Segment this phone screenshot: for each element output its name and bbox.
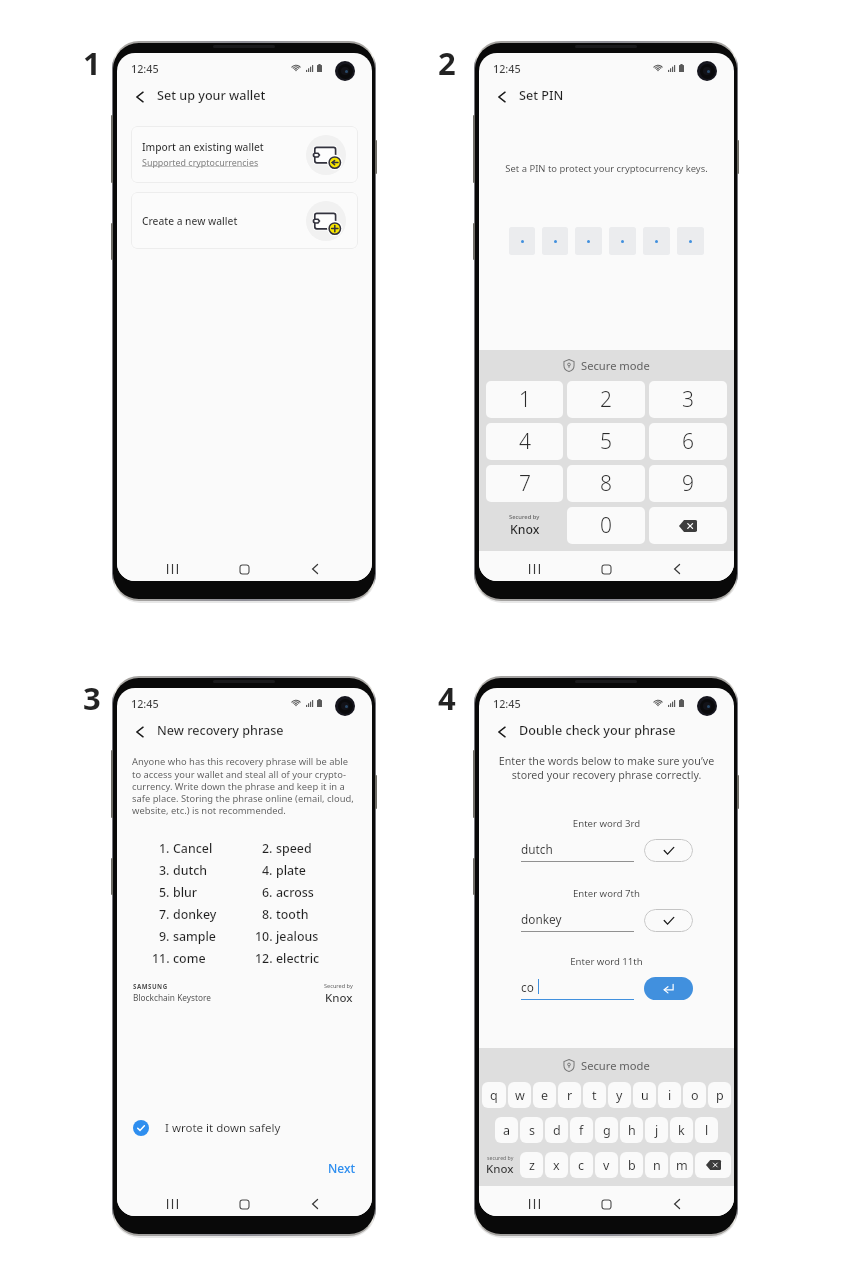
staticText: 4 — [519, 427, 531, 456]
button[interactable]: Backspace — [649, 507, 727, 544]
button[interactable]: Recents — [158, 1190, 186, 1216]
button[interactable]: l — [695, 1117, 718, 1143]
staticText: blur — [173, 884, 198, 901]
staticText: 6 — [682, 427, 694, 456]
staticText: Import an existing wallet — [142, 140, 264, 154]
button[interactable]: b — [620, 1152, 643, 1178]
staticText: y — [616, 1087, 623, 1104]
staticText: Enter word 11th — [479, 955, 734, 968]
button[interactable]: v — [595, 1152, 618, 1178]
button[interactable]: d — [545, 1117, 568, 1143]
staticText: jealous — [276, 928, 319, 945]
button[interactable]: 6 — [649, 423, 727, 460]
staticText: Cancel — [173, 840, 213, 857]
staticText: speed — [276, 840, 312, 857]
button[interactable]: 8 — [567, 465, 645, 502]
button[interactable]: n — [645, 1152, 668, 1178]
button[interactable]: z — [520, 1152, 543, 1178]
staticText: b — [628, 1157, 636, 1174]
staticText: Secure mode — [581, 1058, 650, 1073]
button[interactable]: x — [545, 1152, 568, 1178]
button[interactable]: i — [658, 1082, 681, 1108]
button[interactable]: Create a new wallet — [131, 192, 358, 249]
button[interactable]: u — [633, 1082, 656, 1108]
staticText: 11. — [152, 950, 170, 967]
staticText: 10. — [255, 928, 273, 945]
button[interactable]: Back — [492, 722, 512, 742]
staticText: q — [490, 1087, 498, 1104]
staticText: electric — [276, 950, 320, 967]
button[interactable]: m — [670, 1152, 693, 1178]
button[interactable]: j — [645, 1117, 668, 1143]
button[interactable]: 0 — [567, 507, 645, 544]
button[interactable]: 5 — [567, 423, 645, 460]
staticText: donkey — [521, 911, 562, 927]
button[interactable]: Import an existing wallet — [131, 126, 358, 183]
staticText: 0 — [600, 511, 612, 540]
button[interactable]: Submit — [644, 977, 693, 1000]
staticText: 5 — [600, 427, 612, 456]
staticText: 7 — [519, 469, 531, 498]
staticText: 3 — [83, 677, 101, 719]
staticText: 7. — [159, 906, 170, 923]
button[interactable]: Back — [130, 87, 150, 107]
staticText: come — [173, 950, 206, 967]
button[interactable]: f — [570, 1117, 593, 1143]
button[interactable]: g — [595, 1117, 618, 1143]
button[interactable]: Confirm — [644, 909, 693, 932]
staticText: Next — [328, 1160, 356, 1176]
button[interactable]: k — [670, 1117, 693, 1143]
button[interactable]: Home — [592, 1190, 620, 1216]
button[interactable]: Back — [301, 555, 329, 581]
button[interactable]: s — [520, 1117, 543, 1143]
button[interactable]: Secured by — [484, 507, 565, 544]
button[interactable]: q — [482, 1082, 506, 1108]
button[interactable]: Back — [663, 555, 691, 581]
button[interactable]: h — [620, 1117, 643, 1143]
button[interactable]: 7 — [486, 465, 563, 502]
button[interactable]: c — [570, 1152, 593, 1178]
button[interactable]: Home — [230, 555, 258, 581]
button[interactable]: Back — [492, 87, 512, 107]
button[interactable]: I wrote it down safely — [133, 1113, 372, 1143]
staticText: dutch — [173, 862, 208, 879]
button[interactable]: p — [708, 1082, 731, 1108]
button[interactable]: Confirm — [644, 839, 693, 862]
staticText: Secured by — [509, 513, 540, 521]
button[interactable]: Home — [592, 555, 620, 581]
button[interactable]: r — [558, 1082, 581, 1108]
staticText: 12:45 — [493, 61, 521, 76]
button[interactable]: Home — [230, 1190, 258, 1216]
staticText: z — [529, 1157, 535, 1174]
button[interactable]: a — [495, 1117, 518, 1143]
button[interactable]: Back — [130, 722, 150, 742]
staticText: 9. — [159, 928, 170, 945]
button[interactable]: Next — [324, 1157, 360, 1179]
staticText: secured by — [487, 1154, 514, 1161]
button[interactable]: Backspace — [695, 1152, 731, 1178]
staticText: 3. — [159, 862, 170, 879]
button[interactable]: t — [583, 1082, 606, 1108]
button[interactable]: 4 — [486, 423, 563, 460]
staticText: i — [668, 1087, 672, 1104]
button[interactable]: 3 — [649, 381, 727, 418]
button[interactable]: 1 — [486, 381, 563, 418]
button[interactable]: 2 — [567, 381, 645, 418]
staticText: dutch — [521, 841, 553, 857]
button[interactable]: Recents — [520, 555, 548, 581]
staticText: e — [541, 1087, 549, 1104]
button[interactable]: Recents — [520, 1190, 548, 1216]
staticText: donkey — [173, 906, 217, 923]
button[interactable]: Back — [301, 1190, 329, 1216]
button[interactable]: y — [608, 1082, 631, 1108]
button[interactable]: o — [683, 1082, 706, 1108]
staticText: 12:45 — [131, 61, 159, 76]
staticText: l — [705, 1122, 709, 1139]
button[interactable]: e — [533, 1082, 556, 1108]
button[interactable]: Recents — [158, 555, 186, 581]
button[interactable]: Back — [663, 1190, 691, 1216]
button[interactable]: 9 — [649, 465, 727, 502]
button[interactable]: w — [508, 1082, 531, 1108]
staticText: Enter the words below to make sure you’v… — [485, 754, 728, 782]
staticText: Enter word 3rd — [479, 817, 734, 830]
